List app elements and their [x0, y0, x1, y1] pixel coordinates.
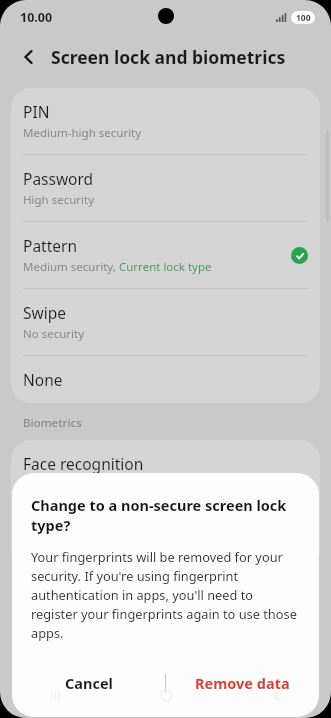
staticText: Medium-high security: [23, 125, 142, 141]
button[interactable]: Home: [111, 672, 221, 718]
button[interactable]: Back: [221, 672, 331, 718]
button[interactable]: None: [11, 356, 320, 403]
staticText: 10.00: [20, 9, 53, 26]
staticText: Swipe: [23, 302, 66, 323]
staticText: Password: [23, 168, 94, 189]
button[interactable]: Password: [11, 155, 320, 221]
button[interactable]: Cancel: [12, 659, 165, 707]
staticText: No security: [23, 326, 85, 342]
staticText: Screen lock and biometrics: [51, 45, 286, 69]
button[interactable]: Back: [12, 40, 46, 74]
staticText: Medium security,: [23, 259, 119, 275]
staticText: Your fingerprints will be removed for yo…: [31, 548, 300, 641]
staticText: High security: [23, 192, 95, 208]
button[interactable]: Remove data: [166, 659, 319, 707]
button[interactable]: Face recognition: [11, 440, 320, 506]
staticText: Change to a non-secure screen lock type?: [31, 495, 300, 535]
staticText: Pattern: [23, 235, 77, 256]
staticText: Current lock type: [119, 259, 212, 275]
button[interactable]: Swipe: [11, 289, 320, 355]
staticText: Registered: [23, 544, 81, 560]
staticText: Cancel: [65, 673, 113, 693]
staticText: 100: [296, 12, 311, 24]
button[interactable]: PIN: [11, 88, 320, 154]
staticText: None: [23, 369, 63, 390]
button[interactable]: Fingerprints: [11, 507, 320, 573]
staticText: Remove data: [195, 673, 290, 693]
staticText: Face recognition: [23, 453, 144, 474]
button[interactable]: Recents: [0, 672, 111, 718]
staticText: Fingerprints: [23, 520, 112, 541]
staticText: PIN: [23, 101, 50, 122]
button[interactable]: Pattern: [11, 222, 320, 288]
staticText: Biometrics: [23, 415, 82, 431]
